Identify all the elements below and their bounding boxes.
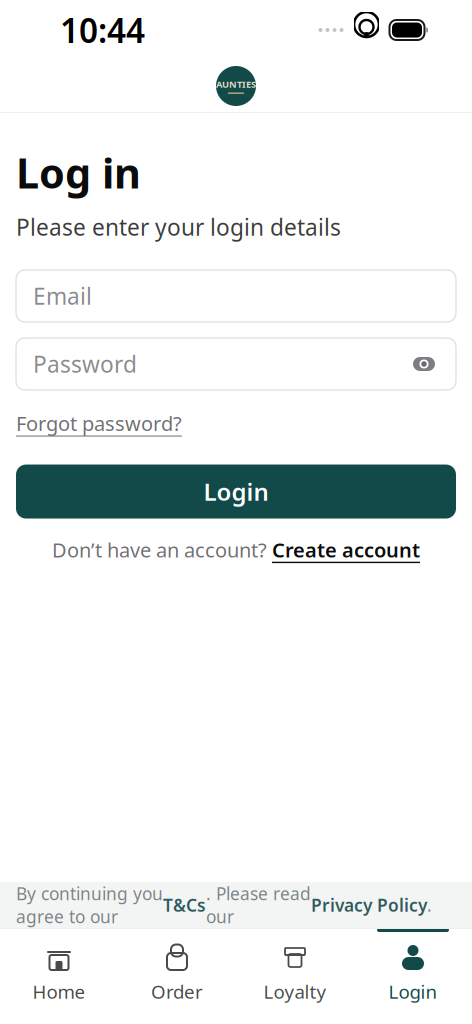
staticText: Password <box>33 349 137 379</box>
staticText: . <box>427 893 432 916</box>
staticText: Log in <box>16 145 141 200</box>
staticText: Loyalty <box>263 979 326 1004</box>
button[interactable]: Privacy Policy <box>311 893 427 916</box>
staticText: Privacy Policy <box>311 893 427 916</box>
staticText: By continuing you agree to our <box>16 882 163 928</box>
staticText: AUNTIES <box>216 78 256 90</box>
button[interactable]: Home <box>0 928 118 1024</box>
button[interactable]: Forgot password? <box>16 404 182 443</box>
staticText: 10:44 <box>60 8 145 52</box>
staticText: Forgot password? <box>16 410 182 437</box>
staticText: Home <box>32 979 85 1004</box>
button[interactable]: Show password <box>409 349 439 379</box>
staticText: Email <box>33 281 92 311</box>
staticText: Order <box>151 979 203 1004</box>
staticText: Login <box>388 979 437 1004</box>
button[interactable]: T&Cs <box>163 893 206 916</box>
staticText: . Please read our <box>206 882 311 928</box>
button[interactable]: Create account <box>272 536 420 563</box>
staticText: Login <box>203 476 268 507</box>
staticText: T&Cs <box>163 893 206 916</box>
staticText: Don’t have an account? <box>52 536 272 563</box>
staticText: Please enter your login details <box>16 212 341 242</box>
button[interactable]: Order <box>118 928 236 1024</box>
button[interactable]: Loyalty <box>236 928 354 1024</box>
staticText: Create account <box>272 536 420 563</box>
button[interactable]: Login <box>354 928 472 1024</box>
button[interactable]: Login <box>16 464 456 518</box>
